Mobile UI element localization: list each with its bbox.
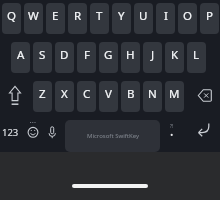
staticText: M — [169, 86, 180, 102]
staticText: Y — [118, 8, 125, 24]
button[interactable]: L — [187, 42, 206, 73]
button[interactable]: B — [121, 81, 140, 112]
button[interactable]: A — [11, 42, 30, 73]
button[interactable] — [184, 120, 220, 152]
staticText: I — [164, 8, 168, 24]
button[interactable]: E — [46, 3, 65, 34]
staticText: C — [83, 86, 91, 102]
button[interactable] — [186, 81, 220, 112]
button[interactable]: G — [99, 42, 118, 73]
staticText: K — [171, 47, 179, 63]
button[interactable]: N — [143, 81, 162, 112]
button[interactable]: C — [77, 81, 96, 112]
button[interactable]: X — [55, 81, 74, 112]
staticText: O — [183, 8, 192, 24]
button[interactable]: Y — [112, 3, 131, 34]
staticText: D — [60, 47, 69, 63]
button[interactable]: H — [121, 42, 140, 73]
staticText: B — [127, 86, 135, 102]
button[interactable] — [72, 184, 148, 188]
staticText: R — [74, 8, 82, 24]
button[interactable]: P — [200, 3, 219, 34]
staticText: W — [28, 8, 39, 24]
button[interactable]: U — [134, 3, 153, 34]
button[interactable]: ?! — [165, 121, 178, 130]
staticText: P — [206, 8, 213, 24]
button[interactable]: R — [68, 3, 87, 34]
button[interactable] — [42, 120, 62, 152]
button[interactable]: W — [24, 3, 43, 34]
staticText: F — [84, 47, 90, 63]
staticText: N — [148, 86, 157, 102]
button[interactable] — [161, 129, 183, 152]
staticText: H — [126, 47, 135, 63]
button[interactable]: K — [165, 42, 184, 73]
button[interactable] — [0, 81, 30, 112]
button[interactable]: J — [143, 42, 162, 73]
button[interactable]: O — [178, 3, 197, 34]
button[interactable]: 123 — [0, 118, 21, 147]
button[interactable]: S — [33, 42, 52, 73]
button[interactable]: T — [90, 3, 109, 34]
staticText: G — [104, 47, 113, 63]
staticText: U — [139, 8, 148, 24]
staticText: T — [96, 8, 103, 24]
button[interactable]: Microsoft SwiftKey — [65, 120, 160, 152]
button[interactable]: I — [156, 3, 175, 34]
button[interactable]: F — [77, 42, 96, 73]
staticText: Z — [39, 86, 46, 102]
staticText: L — [193, 47, 200, 63]
staticText: S — [39, 47, 46, 63]
staticText: X — [61, 86, 68, 102]
button[interactable]: Q — [2, 3, 21, 34]
staticText: ?! — [170, 123, 174, 129]
staticText: J — [151, 47, 155, 63]
staticText: E — [52, 8, 59, 24]
button[interactable]: Z — [33, 81, 52, 112]
staticText: 123 — [2, 126, 19, 139]
button[interactable] — [21, 120, 42, 152]
staticText: Microsoft SwiftKey — [87, 132, 139, 140]
button[interactable]: M — [165, 81, 184, 112]
staticText: Q — [7, 8, 16, 24]
button[interactable]: V — [99, 81, 118, 112]
button[interactable]: D — [55, 42, 74, 73]
staticText: A — [17, 47, 25, 63]
staticText: V — [105, 86, 112, 102]
